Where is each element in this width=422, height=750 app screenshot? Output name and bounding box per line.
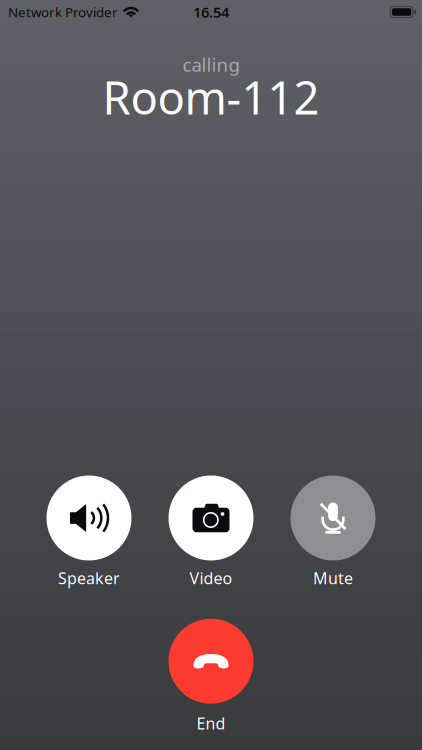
staticText: Mute <box>313 567 353 589</box>
staticText: 16.54 <box>193 2 229 22</box>
staticText: Speaker <box>58 567 120 589</box>
button[interactable]: End <box>168 619 253 734</box>
staticText: Room-112 <box>102 67 319 127</box>
button[interactable]: Video <box>168 475 253 589</box>
staticText: Network Provider <box>8 3 118 21</box>
staticText: calling <box>182 52 239 77</box>
staticText: End <box>196 713 225 734</box>
button[interactable]: Speaker <box>46 475 131 589</box>
staticText: Video <box>189 567 232 589</box>
button[interactable]: Mute <box>290 475 375 589</box>
